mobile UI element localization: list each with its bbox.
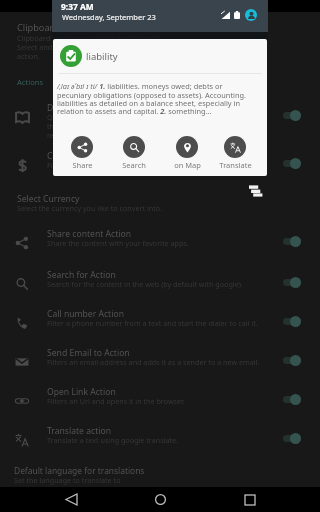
button[interactable]: Recent apps bbox=[231, 487, 269, 512]
staticText: Currency Action bbox=[47, 150, 112, 162]
staticText: Filters an email address and adds it as … bbox=[47, 357, 260, 367]
staticText: Set the language to translate to bbox=[14, 475, 121, 485]
button[interactable]: User account bbox=[245, 9, 257, 21]
staticText: Share bbox=[72, 160, 93, 170]
button[interactable]: Search for Action bbox=[0, 264, 320, 304]
staticText: liability bbox=[86, 50, 118, 63]
staticText: Actions bbox=[17, 77, 44, 87]
staticText: Select the currency you like to convert … bbox=[17, 203, 163, 213]
button[interactable]: Call number Action bbox=[0, 303, 320, 343]
button[interactable]: Translate action bbox=[0, 420, 320, 460]
staticText: Filter a phone number from a text and st… bbox=[47, 318, 258, 328]
button[interactable]: Translate bbox=[209, 136, 261, 170]
staticText: Call number Action bbox=[47, 308, 124, 320]
staticText: Search for the content in the web (by de… bbox=[47, 279, 243, 289]
staticText: Translate a text using google translate. bbox=[47, 435, 179, 445]
staticText: 9:37 AM bbox=[61, 1, 94, 12]
staticText: Select Currency bbox=[17, 193, 80, 205]
button[interactable]: Share bbox=[56, 136, 108, 170]
staticText: Translate bbox=[219, 160, 252, 170]
staticText: Clipboard bbox=[17, 21, 59, 34]
button[interactable]: Open Link Action bbox=[0, 381, 320, 421]
button[interactable]: on Map bbox=[161, 136, 213, 170]
staticText: on Map bbox=[174, 160, 201, 170]
button[interactable]: Currency Action bbox=[0, 145, 320, 185]
staticText: Search for Action bbox=[47, 269, 116, 281]
staticText: Wednesday, September 23 bbox=[62, 12, 156, 22]
staticText: /ˌlaɪ əˈbɪl ɪ ti/ 1. liabilities. moneys… bbox=[57, 81, 247, 116]
staticText: Search bbox=[122, 160, 146, 170]
staticText: Dictionary Action bbox=[47, 102, 116, 114]
staticText: Send Email to Action bbox=[47, 347, 130, 359]
button[interactable]: Home bbox=[141, 487, 179, 512]
staticText: Share content Action bbox=[47, 228, 131, 240]
staticText: Filters an Url and opens it in the brows… bbox=[47, 396, 185, 406]
staticText: Open Link Action bbox=[47, 386, 116, 398]
staticText: Quickly looks up a word in the dictionar… bbox=[47, 112, 145, 140]
button[interactable]: Back bbox=[52, 487, 90, 512]
staticText: Clipboard Service runs in the background… bbox=[17, 33, 161, 61]
button[interactable]: Send Email to Action bbox=[0, 342, 320, 382]
staticText: Share the content with your favorite app… bbox=[47, 238, 189, 248]
button[interactable]: Dictionary Action bbox=[0, 97, 320, 137]
staticText: Finds a currency in a text bbox=[47, 160, 131, 170]
button[interactable]: Search bbox=[108, 136, 160, 170]
staticText: Translate action bbox=[47, 425, 111, 437]
staticText: Default language for translations bbox=[14, 465, 145, 476]
button[interactable]: Share content Action bbox=[0, 223, 320, 263]
